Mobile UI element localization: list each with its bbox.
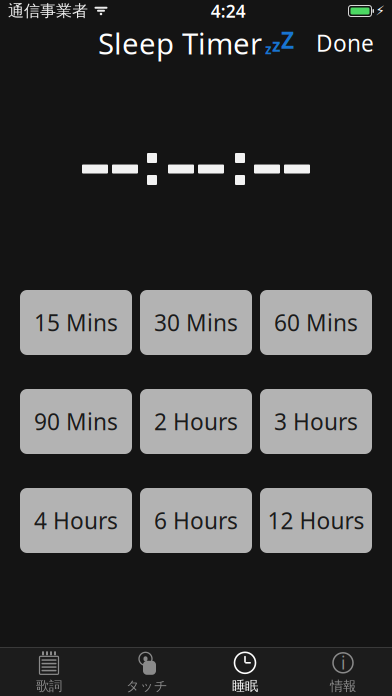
- button[interactable]: 4 Hours: [20, 488, 132, 553]
- button[interactable]: i: [294, 648, 392, 696]
- staticText: 3 Hours: [274, 406, 358, 436]
- staticText: 60 Mins: [274, 307, 358, 337]
- button[interactable]: 90 Mins: [20, 389, 132, 454]
- button[interactable]: 3 Hours: [260, 389, 372, 454]
- button[interactable]: 睡眠: [196, 648, 294, 696]
- staticText: タッチ: [126, 678, 168, 694]
- staticText: 12 Hours: [267, 505, 364, 535]
- staticText: 睡眠: [232, 678, 258, 694]
- staticText: ⚡︎: [375, 3, 384, 18]
- button[interactable]: 30 Mins: [140, 290, 252, 355]
- staticText: 4:24: [211, 0, 246, 22]
- staticText: z: [272, 33, 281, 56]
- staticText: 通信事業者: [8, 1, 88, 21]
- button[interactable]: 6 Hours: [140, 488, 252, 553]
- button[interactable]: タッチ: [98, 648, 196, 696]
- staticText: Done: [316, 28, 374, 58]
- button[interactable]: 15 Mins: [20, 290, 132, 355]
- staticText: 30 Mins: [154, 307, 238, 337]
- staticText: 15 Mins: [34, 307, 118, 337]
- staticText: 90 Mins: [34, 406, 118, 436]
- staticText: i: [341, 651, 345, 674]
- button[interactable]: 歌詞: [0, 648, 98, 696]
- button[interactable]: 12 Hours: [260, 488, 372, 553]
- button[interactable]: 2 Hours: [140, 389, 252, 454]
- staticText: 6 Hours: [154, 505, 238, 535]
- staticText: z: [265, 40, 272, 58]
- staticText: 4 Hours: [34, 505, 118, 535]
- staticText: Sleep Timer: [98, 23, 262, 62]
- staticText: 情報: [330, 678, 356, 694]
- button[interactable]: 60 Mins: [260, 290, 372, 355]
- staticText: 2 Hours: [154, 406, 238, 436]
- staticText: Z: [281, 25, 294, 55]
- button[interactable]: Done: [306, 20, 384, 66]
- staticText: 歌詞: [36, 678, 62, 694]
